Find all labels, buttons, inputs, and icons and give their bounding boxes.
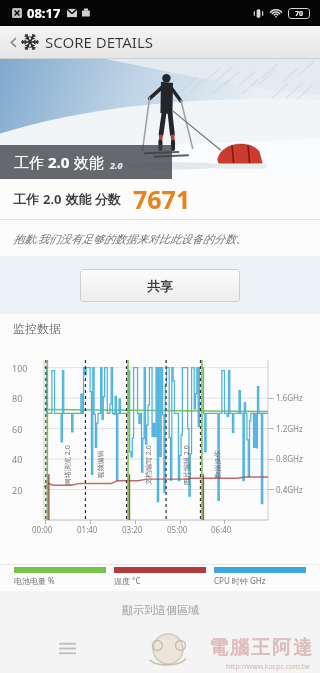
staticText: 100 xyxy=(12,362,28,374)
staticText: 工作 xyxy=(13,190,43,208)
button[interactable]: 温度 °C xyxy=(114,567,206,586)
staticText: 视频编辑 xyxy=(95,450,104,478)
staticText: 监控数据 xyxy=(13,321,61,336)
staticText: 王 xyxy=(251,636,270,660)
staticText: 40 xyxy=(12,453,23,465)
staticText: 腦 xyxy=(230,636,249,660)
button[interactable]: 电池电量 % xyxy=(14,567,106,586)
staticText: 效能 分数 xyxy=(62,190,121,208)
staticText: 0.4GHz xyxy=(276,484,303,495)
staticText: 1.2GHz xyxy=(276,423,303,434)
staticText: 00:00 xyxy=(32,524,53,535)
staticText: 温度 °C xyxy=(114,575,141,586)
staticText: 08:17 xyxy=(27,4,61,22)
staticText: 2.0 xyxy=(110,159,123,171)
staticText: 達 xyxy=(293,636,312,660)
staticText: 顯示到這個區域 xyxy=(122,603,199,617)
staticText: 03:20 xyxy=(122,524,143,535)
staticText: 图片编辑 2.0 xyxy=(182,445,192,485)
staticText: 抱歉,我们没有足够的数据来对比此设备的分数。 xyxy=(13,231,247,246)
staticText: 7671 xyxy=(133,182,191,216)
staticText: 01:40 xyxy=(77,524,98,535)
staticText: 数据操作 xyxy=(212,450,221,478)
staticText: 20 xyxy=(12,484,23,496)
staticText: 阿 xyxy=(272,636,291,660)
staticText: 60 xyxy=(12,423,23,435)
staticText: 效能 xyxy=(70,152,104,172)
staticText: 1.6GHz xyxy=(276,392,303,403)
staticText: 電 xyxy=(209,636,228,660)
staticText: 工作 xyxy=(14,152,48,172)
staticText: 共享 xyxy=(147,278,173,294)
staticText: 电池电量 % xyxy=(14,575,55,586)
staticText: 70 xyxy=(295,9,304,19)
staticText: 2.0 xyxy=(48,152,70,172)
button[interactable]: 共享 xyxy=(80,269,240,302)
staticText: 06:40 xyxy=(211,524,232,535)
button[interactable]: Back xyxy=(6,32,156,52)
staticText: 80 xyxy=(12,392,23,404)
staticText: 05:00 xyxy=(167,524,188,535)
other: Back xyxy=(8,37,19,48)
button[interactable]: Menu xyxy=(52,633,82,663)
staticText: 文档编写 2.0 xyxy=(144,445,154,485)
staticText: CPU 时钟 GHz xyxy=(214,575,266,586)
staticText: 网络浏览 2.0 xyxy=(63,445,73,485)
staticText: SCORE DETAILS xyxy=(45,32,154,52)
staticText: http://www.kocpc.com.tw xyxy=(226,662,310,672)
button[interactable]: CPU 时钟 GHz xyxy=(214,567,306,586)
staticText: 0.8GHz xyxy=(276,453,303,464)
staticText: 2.0 xyxy=(43,190,62,208)
